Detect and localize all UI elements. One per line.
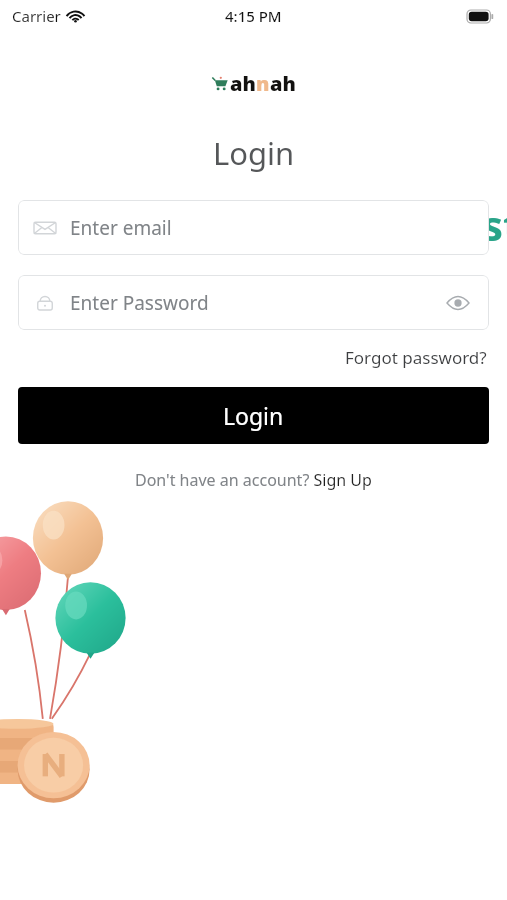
staticText: st: [482, 196, 507, 253]
staticText: Carrier: [12, 6, 61, 26]
staticText: Don't have an account? Sign Up: [135, 469, 372, 491]
button[interactable]: Enter Password: [18, 275, 489, 330]
staticText: Login: [223, 400, 284, 431]
staticText: 4:15 PM: [225, 6, 282, 26]
staticText: ah: [230, 70, 256, 97]
button[interactable]: Enter email: [18, 200, 489, 255]
button[interactable]: Show password: [443, 288, 473, 318]
button[interactable]: Don't have an account? Sign Up: [131, 466, 376, 494]
staticText: Enter email: [70, 215, 172, 241]
button[interactable]: Login: [18, 387, 489, 444]
button[interactable]: Forgot password?: [343, 342, 489, 373]
staticText: ah: [270, 70, 296, 97]
staticText: Login: [0, 132, 507, 174]
staticText: Enter Password: [70, 290, 209, 316]
staticText: Forgot password?: [345, 346, 487, 369]
staticText: n: [256, 70, 270, 97]
